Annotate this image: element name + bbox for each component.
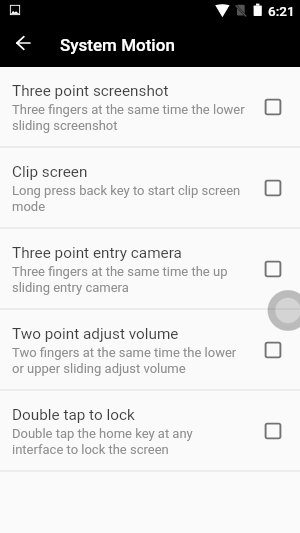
button[interactable]: Double tap to lock: [0, 391, 300, 470]
staticText: System Motion: [60, 35, 175, 55]
button[interactable]: Toggle Three point entry camera: [253, 229, 293, 308]
button[interactable]: Toggle Clip screen: [253, 148, 293, 227]
staticText: Long press back key to start clip screen…: [12, 183, 241, 214]
button[interactable]: Clip screen: [0, 148, 300, 227]
staticText: Three point screenshot: [12, 82, 169, 100]
staticText: Two point adjust volume: [12, 325, 179, 343]
staticText: Three fingers at the same time the lower…: [12, 102, 245, 133]
button[interactable]: Three point screenshot: [0, 67, 300, 146]
staticText: 6:21: [268, 3, 295, 19]
staticText: Double tap to lock: [12, 406, 135, 424]
button[interactable]: Toggle Two point adjust volume: [253, 310, 293, 389]
button[interactable]: Two point adjust volume: [0, 310, 300, 389]
staticText: Three fingers at the same time the up sl…: [12, 264, 228, 295]
staticText: Three point entry camera: [12, 244, 182, 262]
staticText: Clip screen: [12, 163, 88, 181]
button[interactable]: Toggle Three point screenshot: [253, 67, 293, 146]
staticText: Double tap the home key at any interface…: [12, 426, 193, 457]
button[interactable]: Navigate up: [0, 24, 47, 67]
staticText: Two fingers at the same time the lower o…: [12, 345, 237, 376]
button[interactable]: Three point entry camera: [0, 229, 300, 308]
button[interactable]: Toggle Double tap to lock: [253, 391, 293, 470]
